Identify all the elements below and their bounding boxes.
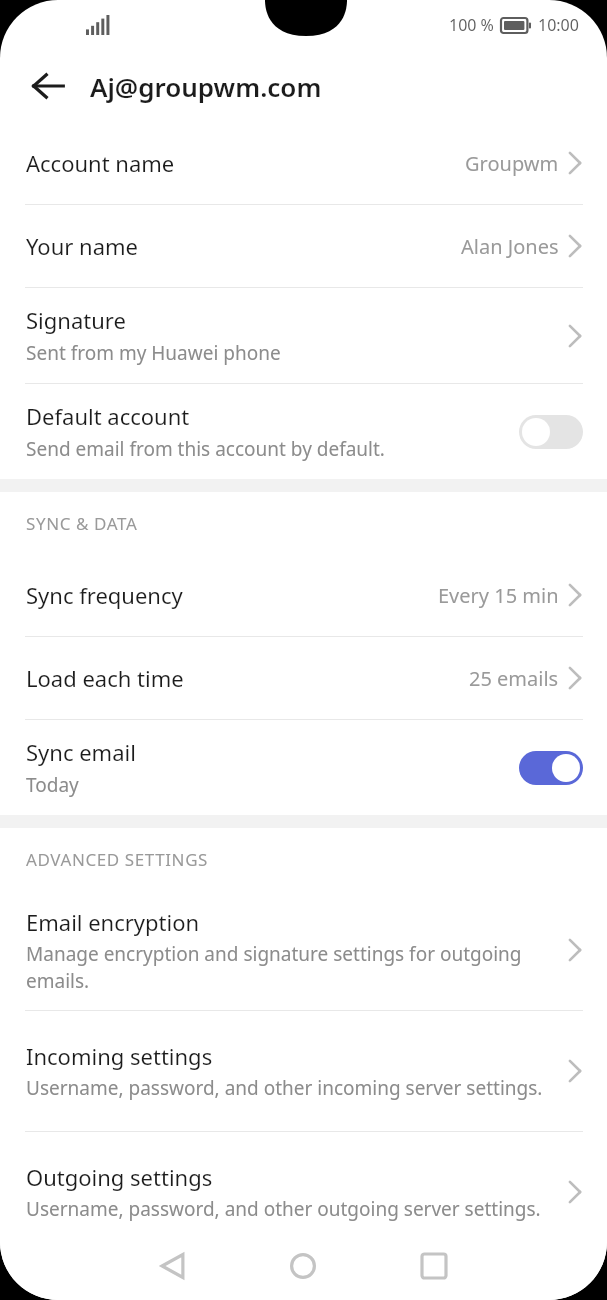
staticText: Manage encryption and signature settings… xyxy=(26,941,547,994)
staticText: Send email from this account by default. xyxy=(26,436,385,462)
button[interactable]: Back xyxy=(140,1233,206,1299)
staticText: Load each time xyxy=(26,663,469,693)
staticText: Sent from my Huawei phone xyxy=(26,340,281,366)
staticText: Your name xyxy=(26,231,461,261)
staticText: Username, password, and other incoming s… xyxy=(26,1075,543,1101)
button[interactable]: Default account xyxy=(0,384,607,479)
staticText: SYNC & DATA xyxy=(26,512,138,535)
staticText: Account name xyxy=(26,148,465,178)
staticText: Signature xyxy=(26,305,126,335)
staticText: ADVANCED SETTINGS xyxy=(26,848,209,871)
staticText: Sync frequency xyxy=(26,580,438,610)
staticText: Email encryption xyxy=(26,907,200,937)
staticText: 10:00 xyxy=(538,14,579,36)
staticText: Aj@groupwm.com xyxy=(90,69,322,104)
button[interactable]: Back xyxy=(14,52,82,120)
staticText: Default account xyxy=(26,401,190,431)
button[interactable]: Incoming settings xyxy=(0,1011,607,1131)
staticText: Alan Jones xyxy=(461,233,559,260)
button[interactable]: Your name xyxy=(0,205,607,287)
staticText: 100 % xyxy=(449,14,494,36)
button[interactable]: Sync frequency xyxy=(0,554,607,636)
staticText: Every 15 min xyxy=(438,582,559,609)
button[interactable]: Home xyxy=(270,1233,336,1299)
button[interactable]: Outgoing settings xyxy=(0,1132,607,1252)
staticText: Incoming settings xyxy=(26,1041,213,1071)
staticText: Outgoing settings xyxy=(26,1162,213,1192)
button[interactable]: Sync email on xyxy=(519,751,583,785)
staticText: Today xyxy=(26,772,79,798)
button[interactable]: Recent apps xyxy=(401,1233,467,1299)
staticText: Username, password, and other outgoing s… xyxy=(26,1196,541,1222)
staticText: 25 emails xyxy=(469,665,559,692)
button[interactable]: Load each time xyxy=(0,637,607,719)
staticText: Groupwm xyxy=(465,150,559,177)
staticText: Sync email xyxy=(26,737,136,767)
button[interactable]: Account name xyxy=(0,122,607,204)
button[interactable]: Sync email xyxy=(0,720,607,815)
button[interactable]: Email encryption xyxy=(0,890,607,1010)
button[interactable]: Default account off xyxy=(519,415,583,449)
button[interactable]: Signature xyxy=(0,288,607,383)
